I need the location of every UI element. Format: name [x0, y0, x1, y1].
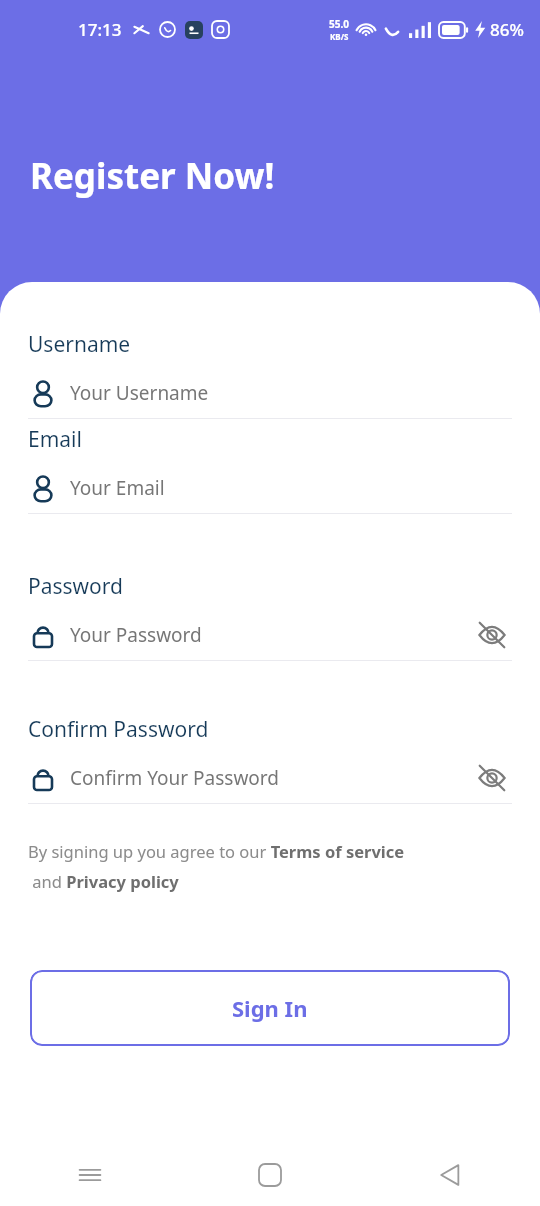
staticText: Your Password — [70, 622, 202, 648]
staticText: 17:13 — [78, 18, 122, 41]
staticText: Sign In — [232, 993, 308, 1023]
button[interactable]: Sign In — [30, 970, 510, 1046]
staticText: Email — [28, 425, 82, 454]
staticText: KB/S — [330, 31, 349, 42]
button[interactable]: Back — [360, 1144, 540, 1206]
button[interactable]: Confirm Your Password — [28, 756, 512, 800]
staticText: Confirm Your Password — [70, 765, 280, 791]
button[interactable]: Home — [180, 1144, 360, 1206]
staticText: 55.0 — [329, 17, 349, 31]
staticText: Confirm Password — [28, 715, 209, 744]
staticText: Your Email — [70, 475, 165, 501]
button[interactable]: Toggle password visibility — [472, 615, 512, 655]
staticText: 86% — [490, 18, 524, 41]
staticText: Your Username — [70, 380, 209, 406]
staticText: Password — [28, 572, 123, 601]
staticText: Register Now! — [30, 152, 275, 200]
button[interactable]: Your Username — [28, 371, 512, 415]
button[interactable]: Recent apps — [0, 1144, 180, 1206]
staticText: By signing up you agree to our Terms of … — [28, 840, 405, 892]
staticText: Username — [28, 330, 131, 359]
button[interactable]: Your Email — [28, 466, 512, 510]
button[interactable]: Your Password — [28, 613, 512, 657]
button[interactable]: Toggle password visibility — [472, 758, 512, 798]
